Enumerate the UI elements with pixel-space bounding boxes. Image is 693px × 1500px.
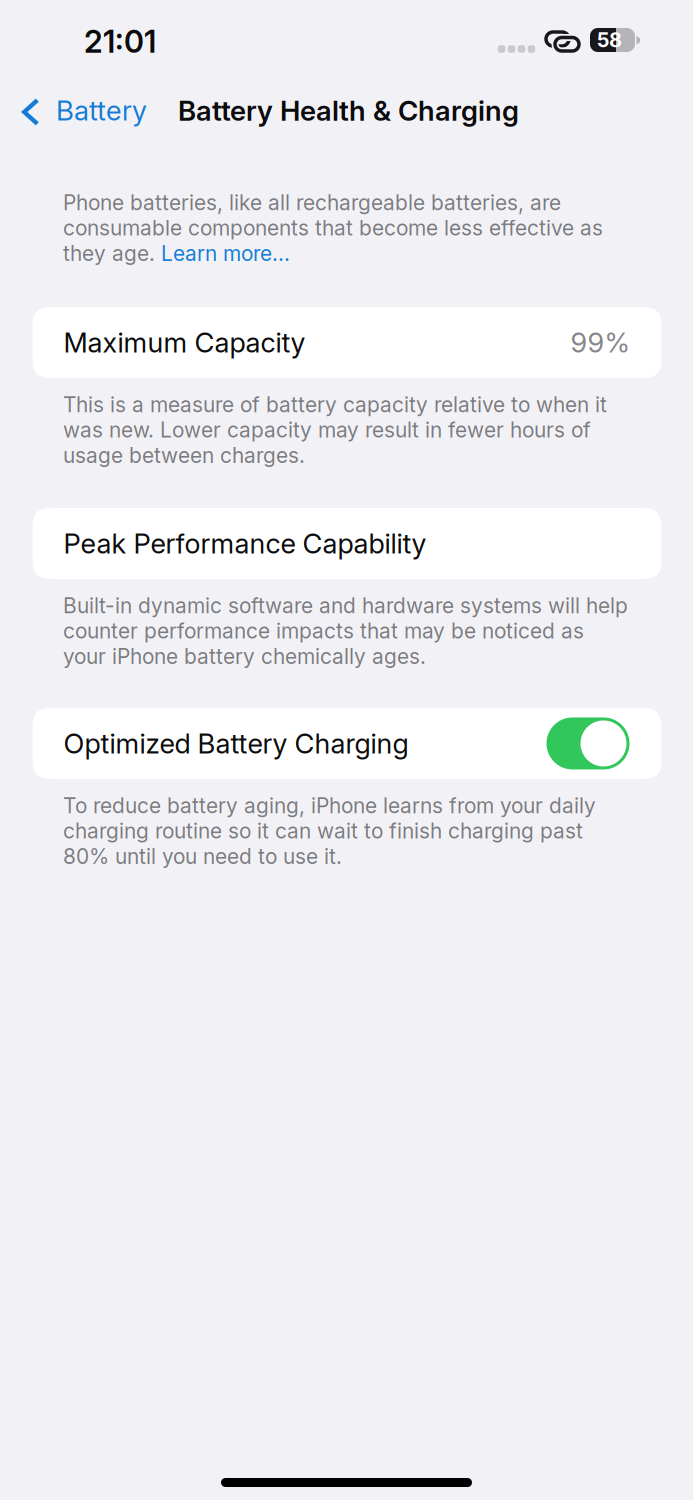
staticText: Peak Performance Capability [63, 527, 426, 560]
staticText: Battery [56, 94, 147, 127]
staticText: Built-in dynamic software and hardware s… [63, 593, 628, 669]
staticText: 99% [570, 326, 629, 359]
button[interactable]: Battery [0, 79, 152, 135]
button[interactable]: Peak Performance Capability [0, 508, 661, 579]
staticText: This is a measure of battery capacity re… [63, 392, 607, 468]
staticText: To reduce battery aging, iPhone learns f… [63, 793, 596, 869]
staticText: Phone batteries, like all rechargeable b… [63, 190, 603, 266]
staticText: Maximum Capacity [63, 326, 305, 359]
staticText: 21:01 [84, 23, 156, 60]
staticText: Battery Health & Charging [178, 94, 519, 128]
staticText: Optimized Battery Charging [63, 727, 408, 760]
button[interactable]: Optimized Battery Charging [546, 717, 629, 769]
staticText: 58 [597, 28, 622, 52]
